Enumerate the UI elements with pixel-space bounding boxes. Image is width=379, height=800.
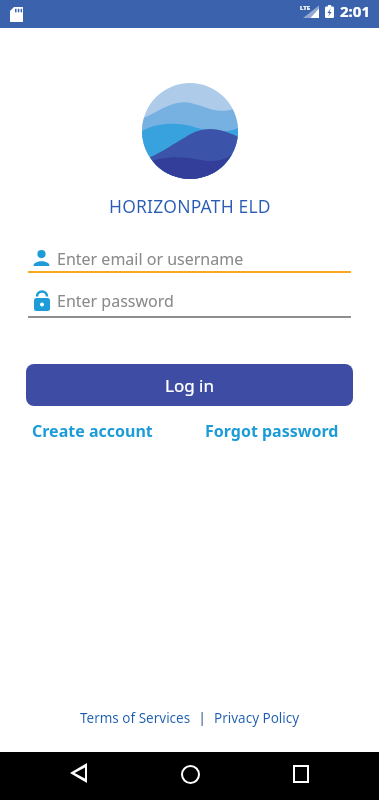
staticText: 2:01 <box>340 1 370 21</box>
button[interactable] <box>277 750 325 798</box>
button[interactable] <box>166 750 214 798</box>
button[interactable]: Enter email or username <box>28 248 351 273</box>
button[interactable]: Log in <box>26 364 353 406</box>
button[interactable]: Enter password <box>28 290 351 318</box>
staticText: HORIZONPATH ELD <box>109 194 271 218</box>
staticText: Enter email or username <box>57 248 244 268</box>
button[interactable] <box>54 749 102 797</box>
button[interactable]: Create account <box>32 420 153 442</box>
staticText: Log in <box>165 374 214 397</box>
staticText: | <box>191 708 214 727</box>
button[interactable]: Terms of Services <box>80 709 191 727</box>
button[interactable]: Privacy Policy <box>214 709 300 727</box>
staticText: Enter password <box>57 290 174 311</box>
button[interactable]: Forgot password <box>205 420 339 442</box>
staticText: LTE <box>300 4 311 12</box>
